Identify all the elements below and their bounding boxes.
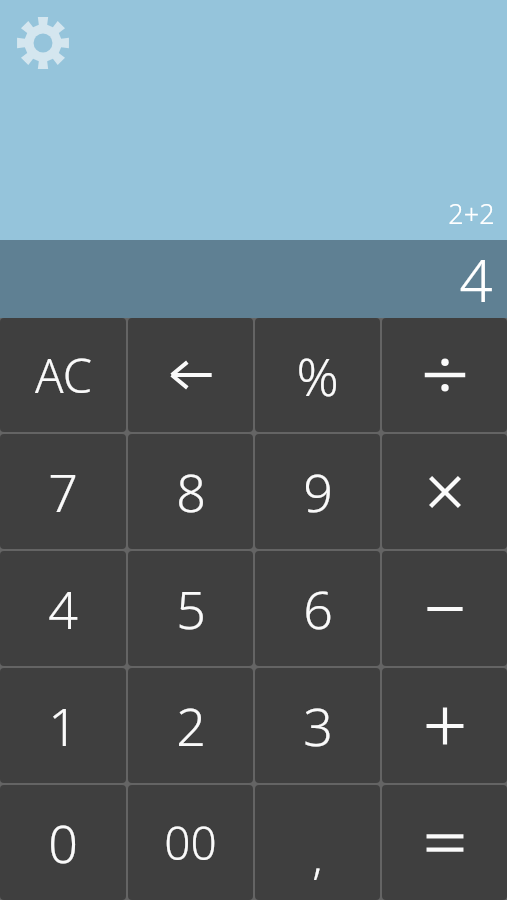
button[interactable]: All clear bbox=[0, 318, 126, 432]
staticText: 6 bbox=[303, 573, 333, 644]
button[interactable]: 00 bbox=[128, 785, 253, 900]
button[interactable]: Plus bbox=[382, 668, 507, 783]
button[interactable]: 6 bbox=[255, 551, 380, 666]
staticText: 9 bbox=[303, 456, 333, 527]
staticText: , bbox=[312, 825, 323, 888]
staticText: 7 bbox=[48, 456, 78, 527]
button[interactable]: Decimal separator bbox=[255, 785, 380, 900]
button[interactable]: 0 bbox=[0, 785, 126, 900]
staticText: 00 bbox=[164, 811, 217, 874]
staticText: 8 bbox=[176, 456, 206, 527]
button[interactable]: 2 bbox=[128, 668, 253, 783]
button[interactable]: Backspace bbox=[128, 318, 253, 432]
button[interactable]: Equals bbox=[382, 785, 507, 900]
staticText: 2 bbox=[176, 690, 206, 761]
button[interactable]: 7 bbox=[0, 434, 126, 549]
button[interactable]: 3 bbox=[255, 668, 380, 783]
button[interactable]: Settings bbox=[14, 14, 72, 72]
staticText: 3 bbox=[303, 690, 333, 761]
button[interactable]: 5 bbox=[128, 551, 253, 666]
staticText: % bbox=[296, 340, 339, 411]
button[interactable]: 4 bbox=[0, 551, 126, 666]
staticText: 5 bbox=[176, 573, 206, 644]
staticText: 4 bbox=[48, 573, 78, 644]
staticText: 0 bbox=[48, 807, 78, 878]
staticText: 4 bbox=[459, 240, 493, 318]
button[interactable]: Multiply bbox=[382, 434, 507, 549]
button[interactable]: Divide bbox=[382, 318, 507, 432]
staticText: AC bbox=[35, 343, 92, 407]
button[interactable]: Minus bbox=[382, 551, 507, 666]
button[interactable]: 9 bbox=[255, 434, 380, 549]
button[interactable]: 1 bbox=[0, 668, 126, 783]
staticText: 1 bbox=[48, 690, 78, 761]
staticText: 2+2 bbox=[448, 195, 495, 232]
button[interactable]: Percent bbox=[255, 318, 380, 432]
button[interactable]: 8 bbox=[128, 434, 253, 549]
